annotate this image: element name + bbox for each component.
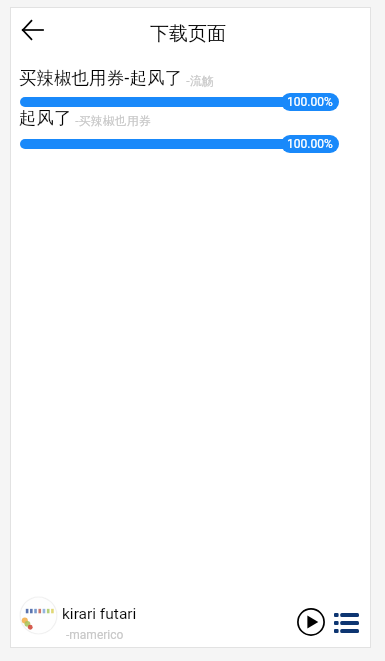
staticText: kirari futari	[62, 605, 137, 623]
staticText: -买辣椒也用券	[75, 112, 151, 128]
button[interactable]: Play	[294, 605, 328, 639]
button[interactable]: 起风了	[10, 104, 371, 146]
button[interactable]: Back	[12, 10, 52, 50]
staticText: 起风了	[19, 107, 72, 129]
staticText: 买辣椒也用券-起风了	[19, 65, 183, 89]
staticText: 100.00%	[287, 95, 333, 109]
staticText: 下载页面	[150, 22, 226, 46]
button[interactable]: Playlist	[331, 608, 361, 638]
button[interactable]: 买辣椒也用券-起风了	[10, 62, 371, 104]
button[interactable]: kirari futari	[10, 590, 371, 646]
staticText: -流觞	[186, 72, 214, 88]
staticText: 100.00%	[287, 137, 333, 151]
staticText: -mamerico	[66, 628, 124, 642]
